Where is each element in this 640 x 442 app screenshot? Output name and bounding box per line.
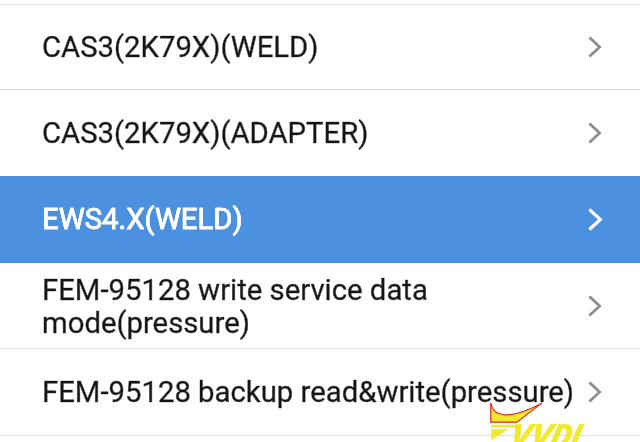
other: Open FEM-95128 backup read&write(pressur… <box>589 382 601 402</box>
button[interactable]: CAS3(2K79X)(ADAPTER) <box>0 90 640 176</box>
other: Open CAS3(2K79X)(ADAPTER) <box>589 123 601 143</box>
button[interactable]: EWS4.X(WELD) <box>0 176 640 263</box>
staticText: CAS3(2K79X)(ADAPTER) <box>42 116 369 150</box>
other: Open EWS4.X(WELD) <box>589 209 602 230</box>
staticText: FEM-95128 write service data mode(pressu… <box>42 273 577 340</box>
staticText: VVDI <box>508 417 579 442</box>
button[interactable]: CAS3(2K79X)(WELD) <box>0 5 640 89</box>
other: Open CAS3(2K79X)(WELD) <box>589 37 601 57</box>
button[interactable]: FEM-95128 write service data mode(pressu… <box>0 263 640 348</box>
staticText: EWS4.X(WELD) <box>42 202 243 236</box>
other: Open FEM-95128 write service data mode(p… <box>589 296 601 316</box>
staticText: FEM-95128 backup read&write(pressure) <box>42 375 575 409</box>
staticText: CAS3(2K79X)(WELD) <box>42 30 319 64</box>
button[interactable]: FEM-95128 backup read&write(pressure) <box>0 349 640 435</box>
